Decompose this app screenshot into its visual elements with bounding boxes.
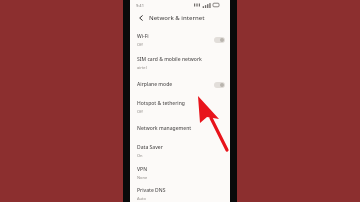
button[interactable]: Private DNS bbox=[130, 185, 230, 202]
button[interactable]: Back bbox=[135, 12, 147, 24]
staticText: On bbox=[137, 153, 143, 158]
button[interactable]: VPN bbox=[130, 163, 230, 183]
button[interactable]: Network management bbox=[130, 120, 230, 137]
button[interactable]: Data Saver bbox=[130, 141, 230, 161]
button[interactable]: SIM card & mobile network bbox=[130, 53, 230, 73]
staticText: Auto bbox=[137, 196, 146, 201]
button[interactable]: Toggle Wi-Fi bbox=[214, 37, 225, 43]
button[interactable]: Hotspot & tethering bbox=[130, 97, 230, 117]
staticText: Off bbox=[137, 42, 143, 47]
staticText: Private DNS bbox=[137, 187, 166, 194]
staticText: Off bbox=[137, 109, 143, 114]
staticText: Network management bbox=[137, 125, 192, 132]
button[interactable]: Airplane mode bbox=[130, 76, 230, 93]
staticText: SIM card & mobile network bbox=[137, 56, 202, 63]
staticText: None bbox=[137, 175, 148, 180]
staticText: airtel bbox=[137, 65, 147, 70]
button[interactable]: Toggle Airplane mode bbox=[214, 82, 225, 88]
staticText: Airplane mode bbox=[137, 81, 173, 88]
staticText: Data Saver bbox=[137, 144, 163, 151]
staticText: Hotspot & tethering bbox=[137, 100, 185, 107]
staticText: Network & internet bbox=[149, 14, 205, 22]
staticText: Wi-Fi bbox=[137, 33, 149, 40]
button[interactable]: Wi-Fi bbox=[130, 30, 230, 50]
staticText: VPN bbox=[137, 166, 148, 173]
staticText: 9:41 bbox=[136, 3, 144, 8]
